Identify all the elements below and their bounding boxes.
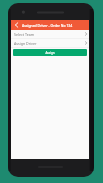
- button[interactable]: Assign: [13, 49, 87, 56]
- staticText: Assign Driver: [14, 41, 37, 46]
- staticText: Select Team: [14, 32, 35, 37]
- staticText: Assign: [45, 51, 55, 55]
- staticText: Assigned Driver - Order No 134: [22, 23, 73, 28]
- button[interactable]: Assign Driver: [11, 39, 89, 47]
- button[interactable]: Back: [11, 20, 21, 30]
- button[interactable]: Select Team: [11, 30, 89, 38]
